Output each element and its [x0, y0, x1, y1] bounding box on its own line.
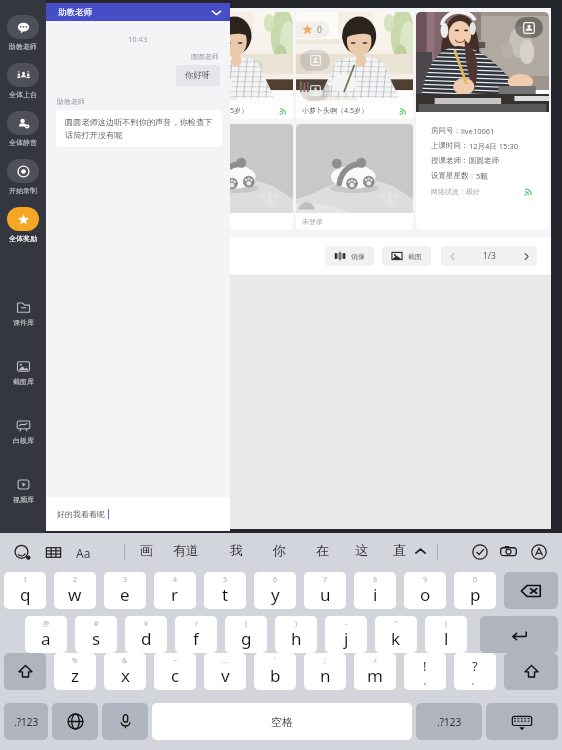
button[interactable]: Backspace — [504, 572, 558, 609]
button[interactable]: & — [104, 653, 146, 690]
button[interactable]: ) — [275, 616, 317, 653]
button[interactable]: 0 — [454, 572, 496, 609]
button[interactable]: 助教老师 — [0, 15, 46, 51]
staticText: 开始录制 — [9, 186, 37, 195]
button[interactable]: .?123 — [4, 703, 48, 740]
button[interactable]: % — [54, 653, 96, 690]
button[interactable]: Switch language — [52, 703, 98, 740]
staticText: # — [94, 619, 99, 629]
staticText: 在 — [316, 542, 329, 558]
button[interactable]: Enter — [480, 616, 558, 653]
button[interactable]: 直 — [390, 539, 409, 561]
button[interactable]: ! — [404, 653, 446, 690]
staticText: 白板库 — [13, 436, 34, 445]
staticText: | — [444, 619, 448, 629]
button[interactable]: Hide keyboard — [486, 703, 558, 740]
button[interactable]: Text size — [71, 541, 95, 565]
staticText: … — [222, 656, 228, 666]
button[interactable]: 5 — [204, 572, 246, 609]
button[interactable]: Settings — [528, 541, 549, 562]
button[interactable]: Camera — [515, 17, 543, 38]
button[interactable]: 0 — [176, 12, 293, 119]
button[interactable]: @ — [25, 616, 67, 653]
button[interactable]: 有道 — [170, 539, 202, 561]
staticText: l — [444, 627, 449, 650]
button[interactable]: Shift — [4, 653, 46, 690]
staticText: 助教老师 — [57, 97, 85, 106]
button[interactable]: 未登录 — [296, 124, 413, 230]
button[interactable]: " — [375, 616, 417, 653]
button[interactable]: 截图库 — [0, 358, 46, 386]
staticText: Aa — [76, 545, 91, 561]
button[interactable]: 白板库 — [0, 417, 46, 445]
staticText: m — [367, 664, 383, 687]
button[interactable]: 镜像 — [325, 246, 374, 266]
button[interactable]: Confirm — [469, 541, 490, 562]
button[interactable]: 9 — [404, 572, 446, 609]
button[interactable]: ¥ — [125, 616, 167, 653]
button[interactable]: Camera — [300, 50, 330, 71]
button[interactable]: 未登录 — [56, 124, 173, 230]
button[interactable]: Shift — [504, 653, 558, 690]
staticText: 12月4日 15:30 — [469, 141, 518, 151]
button[interactable]: 截图 — [382, 246, 431, 266]
button[interactable]: Camera — [498, 541, 519, 562]
button[interactable]: - — [325, 616, 367, 653]
button[interactable]: / — [354, 653, 396, 690]
button[interactable]: 助教老师 — [46, 3, 230, 21]
button[interactable]: Microphone — [180, 80, 210, 101]
button[interactable]: 视频库 — [0, 476, 46, 504]
button[interactable]: # — [75, 616, 117, 653]
button[interactable]: 4 — [154, 572, 196, 609]
button[interactable]: Microphone — [60, 80, 90, 101]
button[interactable]: … — [204, 653, 246, 690]
staticText: a — [41, 627, 51, 650]
button[interactable]: 课件库 — [0, 299, 46, 327]
button[interactable]: Voice input — [102, 703, 148, 740]
button[interactable]: 全体上台 — [0, 63, 46, 99]
button[interactable]: 画 — [137, 539, 156, 561]
staticText: y — [271, 583, 280, 606]
button[interactable]: ; — [304, 653, 346, 690]
button[interactable]: ( — [225, 616, 267, 653]
button[interactable]: Camera — [180, 50, 210, 71]
button[interactable]: / — [175, 616, 217, 653]
staticText: " — [395, 619, 398, 629]
button[interactable]: 1 — [4, 572, 46, 609]
button[interactable]: Keyboard layout — [42, 541, 64, 563]
button[interactable]: 开始录制 — [0, 159, 46, 195]
button[interactable]: Microphone — [300, 80, 330, 101]
button[interactable]: 你 — [270, 539, 289, 561]
button[interactable]: ~ — [154, 653, 196, 690]
button[interactable]: 8 — [354, 572, 396, 609]
staticText: & — [122, 656, 128, 666]
button[interactable]: 全体奖励 — [0, 207, 46, 243]
button[interactable]: 3 — [104, 572, 146, 609]
staticText: 1 — [23, 575, 28, 585]
button[interactable]: 6 — [254, 572, 296, 609]
button[interactable]: 我 — [227, 539, 246, 561]
button[interactable]: More candidates — [410, 541, 430, 561]
button[interactable]: 在 — [313, 539, 332, 561]
button[interactable]: 2 — [54, 572, 96, 609]
button[interactable]: .?123 — [416, 703, 482, 740]
button[interactable]: 0 — [296, 12, 413, 119]
button[interactable]: | — [425, 616, 467, 653]
button[interactable]: 这 — [352, 539, 371, 561]
staticText: i — [373, 583, 378, 606]
button[interactable]: 全体静音 — [0, 111, 46, 147]
button[interactable]: 7 — [304, 572, 346, 609]
button[interactable]: 空格 — [152, 703, 412, 740]
staticText: 助教老师 — [9, 42, 37, 51]
button[interactable]: ' — [254, 653, 296, 690]
button[interactable]: 0 — [56, 12, 173, 119]
button[interactable]: 未登录 — [176, 124, 293, 230]
button[interactable]: Emoji — [11, 541, 33, 563]
button[interactable]: Previous page — [441, 246, 463, 266]
button[interactable]: Next page — [515, 246, 537, 266]
button[interactable]: ? — [454, 653, 496, 690]
button[interactable]: 好的我看看呢 — [46, 497, 230, 531]
